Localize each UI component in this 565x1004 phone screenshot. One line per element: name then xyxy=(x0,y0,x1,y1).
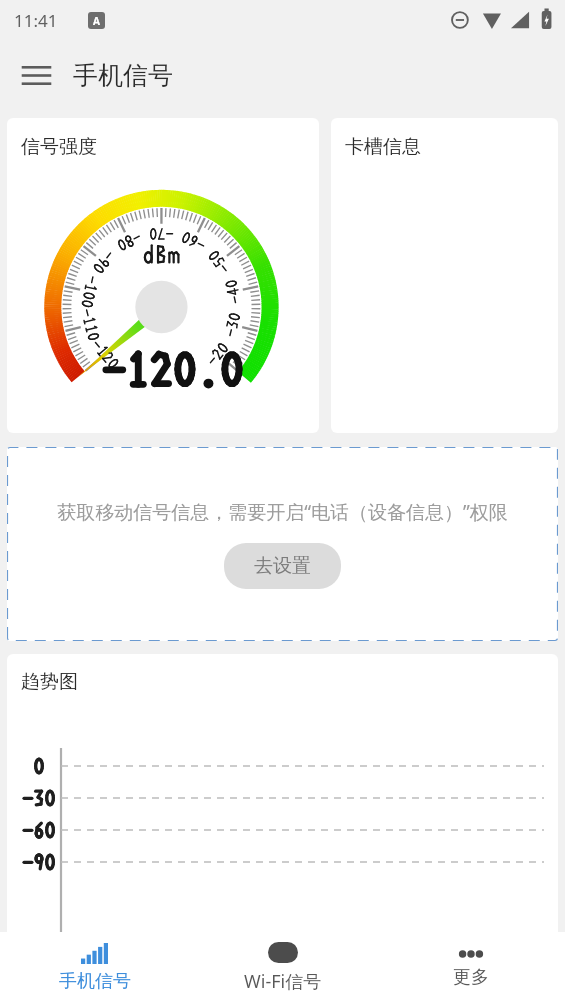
button[interactable]: Wi-Fi信号 xyxy=(189,932,377,1004)
staticText: 获取移动信号信息，需要开启“电话（设备信息）”权限 xyxy=(57,499,508,525)
button[interactable]: 趋势图 xyxy=(7,654,558,1004)
button[interactable]: 更多 xyxy=(377,932,565,1004)
button[interactable]: 手机信号 xyxy=(0,932,189,1004)
staticText: 手机信号 xyxy=(59,970,131,993)
button[interactable]: 信号强度 xyxy=(7,118,319,433)
staticText: A xyxy=(93,14,100,28)
button[interactable]: 去设置 xyxy=(224,543,341,589)
staticText: 手机信号 xyxy=(73,60,173,91)
staticText: 更多 xyxy=(453,966,489,989)
button[interactable]: 卡槽信息 xyxy=(331,118,558,433)
staticText: 卡槽信息 xyxy=(345,135,421,159)
staticText: 去设置 xyxy=(254,554,311,578)
staticText: Wi-Fi信号 xyxy=(244,969,322,994)
staticText: 信号强度 xyxy=(21,135,97,159)
staticText: 趋势图 xyxy=(21,670,78,694)
button[interactable]: Open navigation menu xyxy=(12,51,60,99)
staticText: 11:41 xyxy=(14,9,58,32)
